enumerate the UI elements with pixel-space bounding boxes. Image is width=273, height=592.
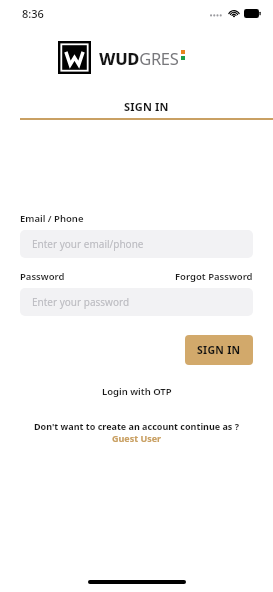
staticText: 8:36 <box>22 6 44 21</box>
other: Home indicator <box>88 580 186 584</box>
staticText: SIGN IN <box>197 343 241 357</box>
staticText: Don't want to create an account continue… <box>22 420 251 445</box>
staticText: WUDGRES <box>99 47 179 69</box>
staticText: Enter your password <box>32 295 130 309</box>
staticText: Password <box>20 270 65 283</box>
button[interactable]: Don't want to create an account continue… <box>22 420 251 445</box>
staticText: Enter your email/phone <box>32 237 144 251</box>
button[interactable]: SIGN IN <box>185 335 253 365</box>
button[interactable]: SIGN IN <box>20 99 273 120</box>
button[interactable]: Enter your email/phone <box>20 230 253 258</box>
staticText: Email / Phone <box>20 212 84 225</box>
staticText: SIGN IN <box>124 99 169 114</box>
button[interactable]: Forgot Password <box>175 270 253 283</box>
button[interactable]: Login with OTP <box>96 383 178 400</box>
staticText: Login with OTP <box>102 385 172 398</box>
staticText: Forgot Password <box>175 270 253 283</box>
button[interactable]: Enter your password <box>20 288 253 316</box>
